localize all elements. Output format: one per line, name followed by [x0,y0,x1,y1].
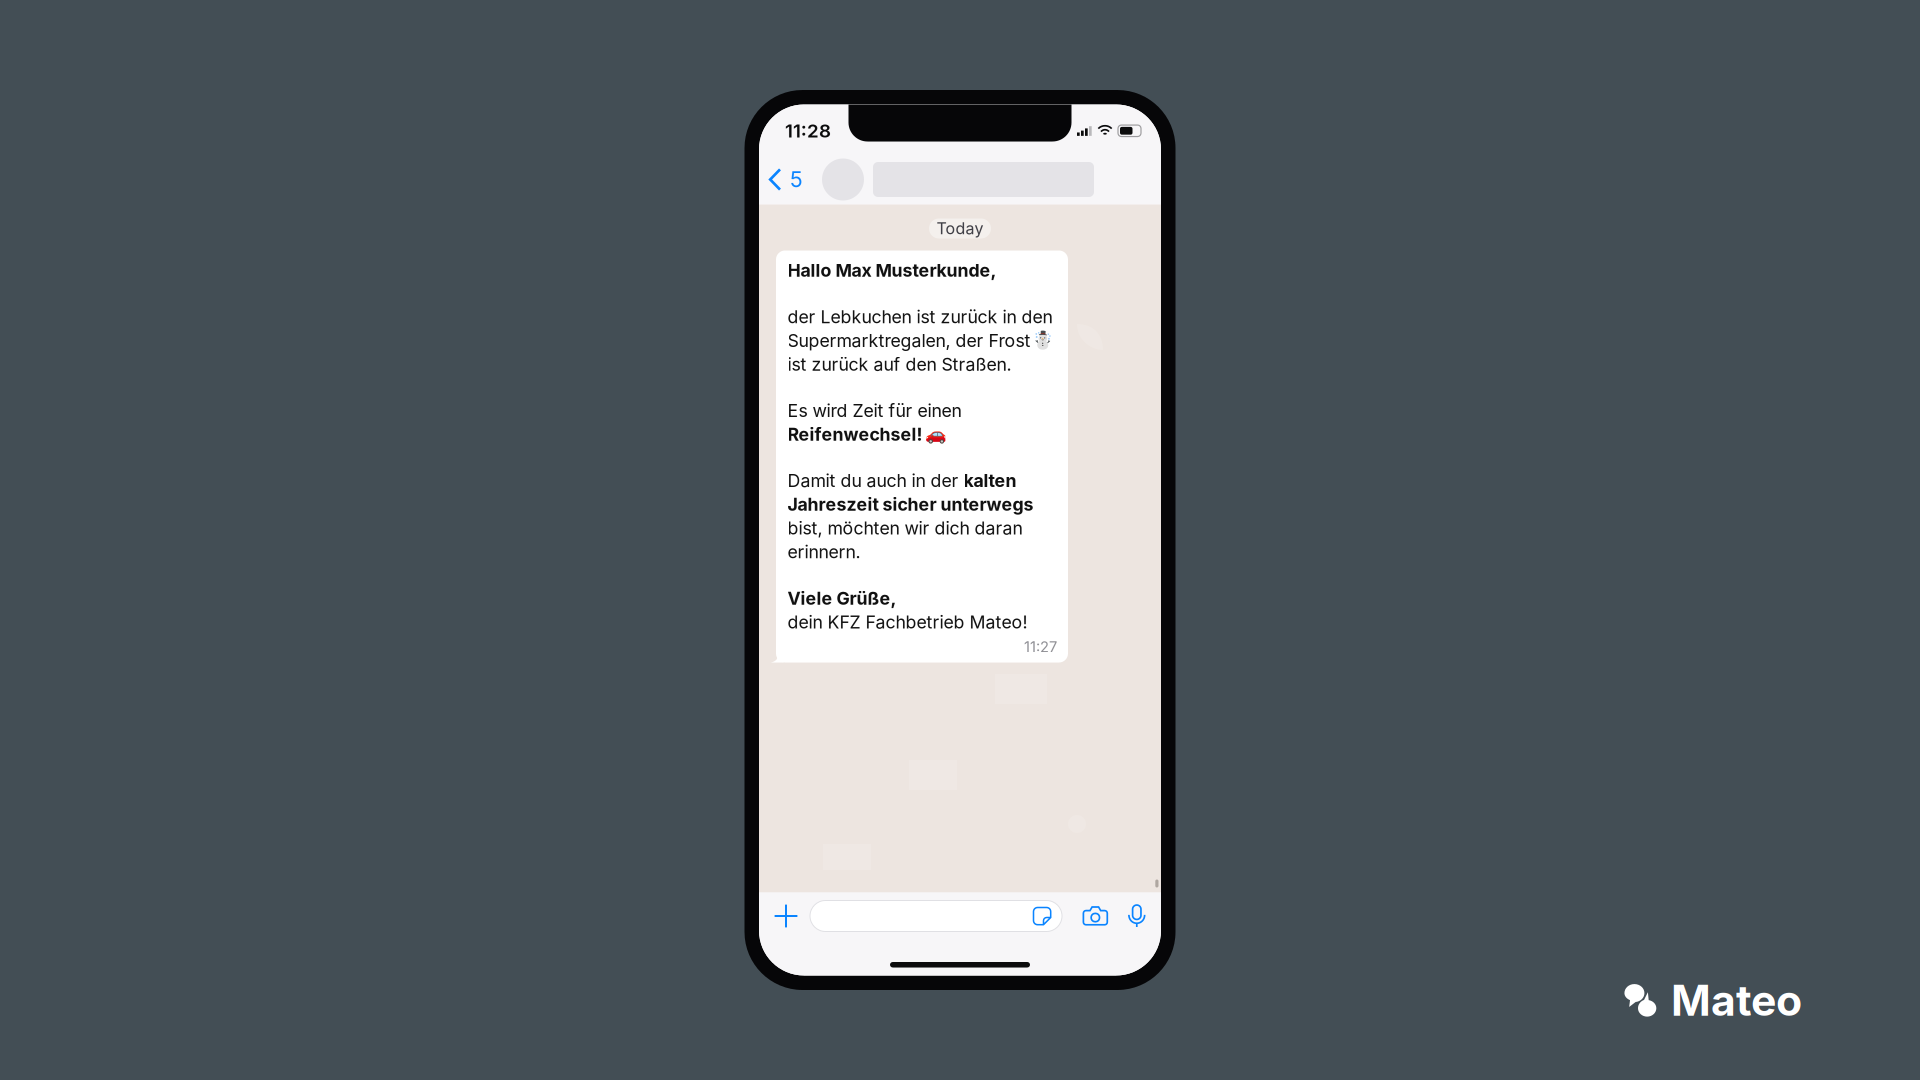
staticText: erinnern. [787,541,860,563]
button[interactable]: Contact info [807,149,1094,204]
staticText: 5 [790,167,803,192]
staticText: 🚗 [925,424,947,444]
button[interactable]: Stickers [1022,900,1062,931]
staticText: Viele Grüße, [787,588,896,609]
staticText: Damit du auch in der [787,470,963,491]
button[interactable]: Voice message [1117,896,1157,936]
button[interactable]: Attach [767,896,805,936]
staticText: bist, möchten wir dich daran [787,517,1022,539]
button[interactable]: Camera [1075,896,1115,936]
staticText: Today [936,219,983,238]
staticText: der Lebkuchen ist zurück in den [787,306,1052,327]
staticText: 11:27 [1024,638,1057,656]
staticText: 11:28 [785,119,831,142]
staticText: Es wird Zeit für einen [787,400,961,421]
staticText: Supermarktregalen, der Frost [787,330,1035,351]
staticText: ☃️ [1032,330,1054,351]
staticText: Mateo [1671,974,1802,1026]
staticText: dein KFZ Fachbetrieb Mateo! [787,611,1027,633]
staticText: Hallo Max Musterkunde, [787,260,996,281]
button[interactable]: Back, 5 conversations [759,149,807,204]
staticText: Jahreszeit sicher unterwegs [787,494,1033,515]
staticText: kalten [963,470,1016,491]
staticText: ist zurück auf den Straßen. [787,353,1011,375]
staticText: Reifenwechsel! [787,424,926,445]
